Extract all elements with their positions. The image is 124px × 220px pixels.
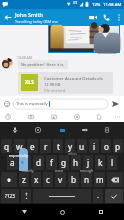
button[interactable]: Comma and voice xyxy=(21,189,31,203)
staticText: j xyxy=(87,157,90,168)
staticText: 12% xyxy=(92,2,101,8)
staticText: s xyxy=(21,158,24,166)
staticText: exactly xyxy=(22,168,34,173)
staticText: z xyxy=(22,174,26,185)
button[interactable]: j xyxy=(83,155,93,170)
button[interactable]: Settings xyxy=(102,122,112,138)
button[interactable]: Camera xyxy=(26,112,36,122)
staticText: w xyxy=(16,141,23,152)
button[interactable]: More attachments xyxy=(112,112,122,122)
staticText: i xyxy=(93,141,96,152)
button[interactable]: p xyxy=(113,139,123,153)
staticText: a xyxy=(10,157,15,168)
button[interactable]: u xyxy=(77,139,87,153)
button[interactable]: Emoji xyxy=(1,96,12,111)
button[interactable]: h xyxy=(71,155,81,170)
button[interactable]: ?123 xyxy=(1,189,19,203)
button[interactable]: Back xyxy=(9,204,39,220)
staticText: m xyxy=(96,174,104,185)
button[interactable]: This is especially xyxy=(13,99,108,109)
button[interactable]: Send xyxy=(108,96,123,111)
button[interactable]: m xyxy=(94,172,105,187)
staticText: This is especially xyxy=(16,101,48,107)
staticText: v xyxy=(58,174,63,185)
button[interactable]: w xyxy=(14,139,25,153)
staticText: even xyxy=(55,168,64,173)
staticText: c xyxy=(46,174,50,185)
button[interactable]: b xyxy=(68,172,79,187)
staticText: especially xyxy=(9,153,29,159)
staticText: x xyxy=(34,174,39,185)
button[interactable]: k xyxy=(95,155,105,170)
button[interactable]: No problem! Here it is. xyxy=(18,60,68,69)
button[interactable]: Space xyxy=(33,189,91,203)
button[interactable]: Enter xyxy=(105,189,123,203)
button[interactable]: GIF xyxy=(80,122,90,138)
button[interactable]: y xyxy=(65,139,75,153)
button[interactable]: t xyxy=(53,139,63,153)
button[interactable]: Clipboard xyxy=(57,122,67,138)
staticText: p xyxy=(115,141,121,152)
button[interactable]: Gallery xyxy=(49,112,59,122)
staticText: t xyxy=(57,141,60,152)
staticText: h xyxy=(73,157,79,168)
button[interactable]: Location xyxy=(72,112,82,122)
button[interactable]: e xyxy=(27,139,38,153)
button[interactable]: s xyxy=(20,155,31,170)
staticText: John Smith xyxy=(15,11,43,18)
button[interactable]: o xyxy=(101,139,111,153)
staticText: b xyxy=(71,174,77,185)
button[interactable]: Timer xyxy=(3,112,13,122)
staticText: 11:58 AM xyxy=(103,2,122,8)
button[interactable]: Shift xyxy=(1,172,17,187)
staticText: what xyxy=(68,151,77,156)
staticText: 10:48 AM xyxy=(17,55,32,60)
staticText: g xyxy=(61,157,67,168)
button[interactable]: Stickers xyxy=(33,122,43,138)
button[interactable]: x xyxy=(31,172,41,187)
staticText: u xyxy=(79,141,85,152)
button[interactable]: q xyxy=(1,139,12,153)
button[interactable]: Document xyxy=(94,112,104,122)
staticText: Travelling today 08M mo xyxy=(15,19,58,24)
button[interactable]: l xyxy=(107,155,117,170)
staticText: XLS xyxy=(25,79,34,86)
staticText: l xyxy=(111,157,114,168)
button[interactable]: f xyxy=(46,155,57,170)
staticText: q xyxy=(4,141,10,152)
button[interactable]: Video call xyxy=(86,9,100,25)
staticText: r xyxy=(44,141,48,152)
staticText: y xyxy=(68,141,73,152)
staticText: No problem! Here it is. xyxy=(21,62,65,67)
staticText: 12.98 KB xyxy=(44,82,61,87)
button[interactable]: More options xyxy=(113,9,124,25)
button[interactable]: Recent apps xyxy=(86,204,116,220)
staticText: enough xyxy=(80,168,94,173)
staticText: d xyxy=(36,157,42,168)
button[interactable]: d xyxy=(33,155,44,170)
staticText: f xyxy=(50,157,53,168)
button[interactable]: Voice input xyxy=(10,122,20,138)
button[interactable]: i xyxy=(89,139,99,153)
staticText: s xyxy=(24,157,28,168)
button[interactable]: Period xyxy=(93,189,103,203)
staticText: o xyxy=(104,141,109,152)
staticText: n xyxy=(84,174,90,185)
button[interactable]: Home xyxy=(47,204,77,220)
button[interactable]: z xyxy=(19,172,29,187)
button[interactable]: Back xyxy=(0,9,15,25)
staticText: e xyxy=(30,141,35,152)
staticText: k xyxy=(98,157,103,168)
button[interactable]: c xyxy=(43,172,53,187)
button[interactable]: XLS xyxy=(18,72,113,94)
button[interactable]: n xyxy=(81,172,92,187)
button[interactable]: Photo attachment xyxy=(49,26,119,52)
staticText: Customer Account Details.xls xyxy=(44,75,103,81)
staticText: File received. xyxy=(44,88,66,93)
button[interactable]: a xyxy=(7,155,18,170)
button[interactable]: r xyxy=(40,139,51,153)
button[interactable]: Backspace xyxy=(107,172,123,187)
button[interactable]: g xyxy=(59,155,69,170)
button[interactable]: Call xyxy=(100,9,113,25)
button[interactable]: v xyxy=(55,172,66,187)
